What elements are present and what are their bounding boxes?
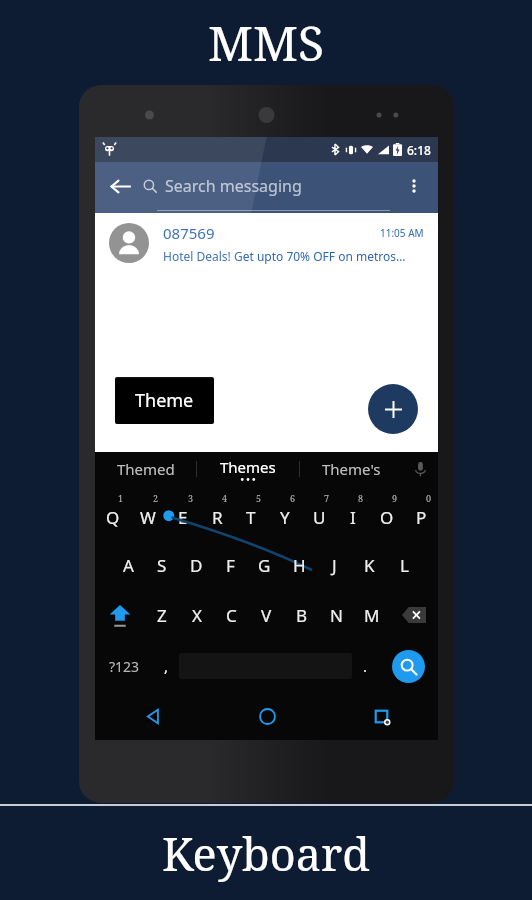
button[interactable]: 3 [165, 486, 200, 540]
button[interactable]: Recents [324, 692, 438, 740]
staticText: 3 [188, 492, 194, 504]
staticText: Search messaging [165, 175, 302, 197]
staticText: O [380, 506, 394, 529]
staticText: S [157, 554, 167, 577]
staticText: U [313, 506, 326, 529]
button[interactable]: 0 [404, 486, 438, 540]
staticText: E [178, 506, 188, 529]
button[interactable]: New message [368, 384, 418, 434]
button[interactable]: B [284, 590, 319, 640]
button[interactable]: M [354, 590, 389, 640]
staticText: T [246, 506, 256, 529]
staticText: X [192, 604, 202, 627]
staticText: 4 [222, 492, 228, 504]
staticText: D [190, 554, 203, 577]
staticText: Themes [220, 457, 276, 477]
button[interactable]: K [352, 540, 387, 590]
staticText: 9 [392, 492, 398, 504]
staticText: Z [157, 604, 167, 627]
button[interactable]: Delete [389, 590, 438, 640]
button[interactable]: Voice input [402, 452, 438, 486]
button[interactable]: G [247, 540, 282, 590]
staticText: Hotel Deals! Get upto 70% OFF on metros… [163, 248, 406, 264]
button[interactable]: 5 [234, 486, 268, 540]
button[interactable]: Themed [95, 452, 196, 486]
staticText: R [212, 506, 223, 529]
staticText: 2 [153, 492, 159, 504]
button[interactable]: 1 [95, 486, 130, 540]
button[interactable]: J [317, 540, 352, 590]
button[interactable]: S [145, 540, 179, 590]
button[interactable]: Shift [95, 590, 144, 640]
button[interactable]: Home [210, 692, 324, 740]
staticText: . [363, 656, 368, 676]
staticText: L [400, 554, 409, 577]
button[interactable]: D [179, 540, 213, 590]
button[interactable]: V [249, 590, 284, 640]
staticText: G [258, 554, 271, 577]
staticText: 7 [324, 492, 330, 504]
staticText: A [123, 554, 134, 577]
staticText: H [293, 554, 306, 577]
button[interactable]: Themes [197, 452, 299, 486]
button[interactable]: 7 [302, 486, 336, 540]
staticText: C [226, 604, 237, 627]
staticText: M [364, 604, 380, 627]
button[interactable]: . [352, 640, 378, 692]
staticText: K [364, 554, 375, 577]
button[interactable]: N [319, 590, 354, 640]
button[interactable]: Z [144, 590, 179, 640]
staticText: Y [280, 506, 290, 529]
staticText: Q [106, 506, 120, 529]
button[interactable]: X [179, 590, 214, 640]
button[interactable]: 9 [370, 486, 404, 540]
staticText: 5 [256, 492, 262, 504]
staticText: 1 [118, 492, 124, 504]
staticText: W [140, 506, 156, 529]
staticText: I [350, 506, 356, 529]
button[interactable]: More options [390, 162, 438, 210]
button[interactable]: ?123 [95, 640, 153, 692]
staticText: Theme [135, 388, 194, 413]
staticText: N [330, 604, 343, 627]
staticText: F [226, 554, 235, 577]
staticText: Themed [117, 459, 175, 479]
button[interactable]: 6 [268, 486, 302, 540]
staticText: B [296, 604, 308, 627]
staticText: , [164, 656, 169, 676]
button[interactable]: Back [95, 692, 210, 740]
button[interactable]: 8 [336, 486, 370, 540]
staticText: 087569 [163, 223, 380, 243]
button[interactable]: Theme's [300, 452, 402, 486]
button[interactable]: 4 [200, 486, 234, 540]
staticText: Theme's [322, 459, 381, 479]
staticText: 6 [290, 492, 296, 504]
button[interactable]: , [153, 640, 179, 692]
button[interactable]: A [111, 540, 145, 590]
staticText: 0 [426, 492, 432, 504]
staticText: J [332, 554, 337, 577]
staticText: ?123 [109, 657, 140, 676]
button[interactable]: Back [95, 162, 143, 210]
button[interactable]: Search messaging [143, 162, 390, 210]
staticText: V [261, 604, 272, 627]
staticText: MMS [208, 10, 325, 75]
button[interactable]: F [213, 540, 247, 590]
button[interactable]: 2 [130, 486, 165, 540]
staticText: 6:18 [407, 142, 431, 158]
button[interactable]: Theme [115, 377, 214, 424]
button[interactable]: L [387, 540, 422, 590]
staticText: P [416, 506, 427, 529]
staticText: 8 [358, 492, 364, 504]
button[interactable]: Search [378, 640, 438, 692]
button[interactable]: C [214, 590, 249, 640]
staticText: 11:05 AM [380, 226, 424, 240]
staticText: Keyboard [162, 823, 370, 884]
button[interactable]: 087569 [95, 213, 438, 285]
button[interactable]: H [282, 540, 317, 590]
